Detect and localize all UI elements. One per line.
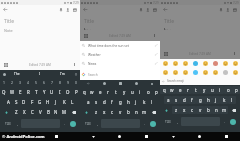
button[interactable]: F — [28, 98, 36, 106]
button[interactable]: Shift — [160, 105, 172, 115]
button[interactable]: Emoji — [220, 59, 230, 68]
button[interactable]: , — [174, 117, 180, 126]
button[interactable]: . — [141, 119, 147, 128]
button[interactable]: k — [140, 98, 148, 106]
button[interactable]: W — [8, 88, 16, 96]
button[interactable]: C — [28, 108, 36, 116]
button[interactable]: Weather — [80, 50, 160, 59]
button[interactable]: h — [124, 98, 132, 106]
button[interactable]: Z — [12, 108, 20, 116]
button[interactable]: H — [44, 98, 52, 106]
button[interactable]: 6 — [40, 77, 48, 87]
button[interactable]: Back — [80, 132, 106, 141]
button[interactable]: f — [108, 98, 116, 106]
button[interactable]: e — [96, 88, 104, 96]
button[interactable]: x — [100, 108, 108, 116]
button[interactable]: l — [148, 98, 156, 106]
button[interactable]: Back — [80, 80, 96, 87]
button[interactable]: Add — [162, 50, 169, 57]
button[interactable]: v — [196, 106, 204, 114]
button[interactable]: w — [88, 88, 96, 96]
button[interactable]: Emoji — [180, 59, 190, 68]
button[interactable]: p — [152, 88, 160, 96]
button[interactable]: , — [14, 119, 20, 128]
button[interactable]: Add collaborator — [144, 6, 151, 13]
button[interactable]: Stickers — [96, 80, 112, 87]
button[interactable]: c — [188, 106, 196, 114]
button[interactable]: Back — [160, 132, 186, 141]
button[interactable]: b — [124, 108, 132, 116]
button[interactable]: I — [56, 88, 64, 96]
button[interactable]: Pin note — [217, 6, 224, 13]
button[interactable]: a — [84, 98, 92, 106]
button[interactable]: m — [140, 108, 148, 116]
button[interactable]: 7 — [48, 77, 56, 87]
button[interactable]: i — [216, 86, 224, 94]
button[interactable]: Back — [82, 6, 89, 13]
button[interactable]: Emoji — [230, 68, 240, 77]
button[interactable]: Add — [2, 61, 9, 68]
button[interactable]: Pin note — [137, 6, 144, 13]
button[interactable]: D — [20, 98, 28, 106]
button[interactable]: Emoji — [210, 59, 220, 68]
button[interactable]: N — [52, 108, 60, 116]
button[interactable]: K — [60, 98, 68, 106]
button[interactable]: . — [221, 117, 227, 126]
button[interactable]: P — [72, 88, 80, 96]
button[interactable]: S — [12, 98, 20, 106]
button[interactable]: Enter — [150, 121, 156, 127]
button[interactable]: G — [36, 98, 44, 106]
button[interactable]: n — [132, 108, 140, 116]
button[interactable]: q — [160, 86, 168, 94]
button[interactable]: p — [232, 86, 240, 94]
button[interactable]: 1 — [0, 77, 8, 87]
button[interactable]: Voice input — [74, 72, 78, 76]
button[interactable]: g — [116, 98, 124, 106]
button[interactable]: m — [220, 106, 228, 114]
button[interactable]: s — [92, 98, 100, 106]
button[interactable]: t — [112, 88, 120, 96]
button[interactable]: Emoji — [160, 68, 170, 77]
button[interactable]: t — [192, 86, 200, 94]
button[interactable]: News — [80, 59, 160, 68]
button[interactable]: 9 — [64, 77, 72, 87]
button[interactable]: 8 — [56, 77, 64, 87]
button[interactable]: u — [208, 86, 216, 94]
button[interactable]: 4 — [24, 77, 32, 87]
button[interactable]: i — [136, 88, 144, 96]
button[interactable]: Archive — [71, 6, 78, 13]
button[interactable]: q — [80, 88, 88, 96]
button[interactable]: Emoji — [190, 59, 200, 68]
button[interactable]: e — [176, 86, 184, 94]
button[interactable]: E — [16, 88, 24, 96]
button[interactable]: Emoji — [170, 59, 180, 68]
button[interactable]: Emoji — [190, 68, 200, 77]
button[interactable]: More options — [71, 61, 78, 68]
button[interactable]: z — [92, 108, 100, 116]
button[interactable]: Archive — [231, 6, 238, 13]
button[interactable]: Back — [162, 6, 169, 13]
button[interactable]: y — [200, 86, 208, 94]
button[interactable]: k — [220, 96, 228, 104]
button[interactable]: L — [68, 98, 76, 106]
button[interactable]: Emoji — [220, 68, 230, 77]
button[interactable]: X — [20, 108, 28, 116]
button[interactable]: Emoji — [200, 68, 210, 77]
button[interactable]: Emoji — [170, 68, 180, 77]
button[interactable]: ?123 — [161, 117, 174, 126]
button[interactable]: Home — [186, 132, 213, 141]
button[interactable]: Add — [82, 32, 89, 39]
button[interactable]: w — [168, 86, 176, 94]
button[interactable]: Emoji — [200, 59, 210, 68]
button[interactable]: Shift — [80, 107, 92, 117]
button[interactable]: r — [184, 86, 192, 94]
button[interactable]: A — [4, 98, 12, 106]
button[interactable]: Home — [106, 132, 133, 141]
button[interactable]: Recent apps — [213, 132, 240, 141]
button[interactable]: Back — [2, 6, 9, 13]
button[interactable]: 0 — [72, 77, 80, 87]
button[interactable]: ?123 — [81, 119, 94, 128]
button[interactable]: O — [64, 88, 72, 96]
